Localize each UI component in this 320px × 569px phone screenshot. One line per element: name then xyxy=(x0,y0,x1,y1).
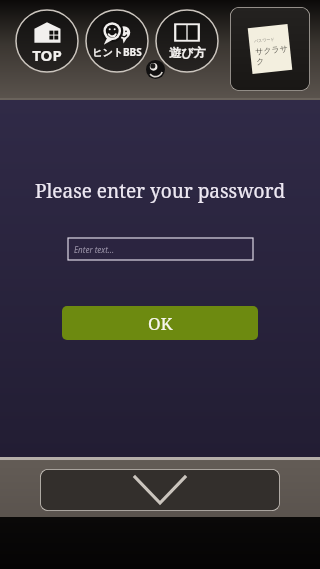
staticText: TOP xyxy=(32,45,62,65)
button[interactable]: Scroll down xyxy=(40,469,280,511)
staticText: Please enter your password xyxy=(0,178,320,204)
staticText: OK xyxy=(148,312,173,335)
button[interactable]: OK xyxy=(62,306,258,340)
button[interactable]: Enter text... xyxy=(68,238,253,260)
staticText: 遊び方 xyxy=(169,45,206,60)
button[interactable]: TOP xyxy=(14,8,80,74)
button[interactable]: Memo xyxy=(230,7,310,91)
button[interactable]: ヒントBBS xyxy=(84,8,150,74)
staticText: Enter text... xyxy=(74,244,114,255)
staticText: サクラサク xyxy=(255,43,292,66)
button[interactable]: 遊び方 xyxy=(154,8,220,74)
staticText: パスワード xyxy=(254,36,275,44)
staticText: ヒントBBS xyxy=(92,45,142,59)
